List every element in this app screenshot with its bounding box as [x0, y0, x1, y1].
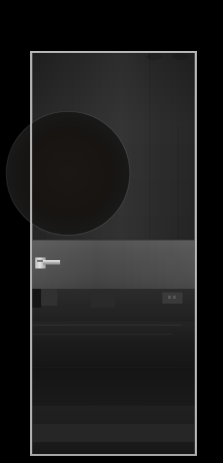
button[interactable]: Glossy black door with grey inset band	[0, 0, 223, 463]
